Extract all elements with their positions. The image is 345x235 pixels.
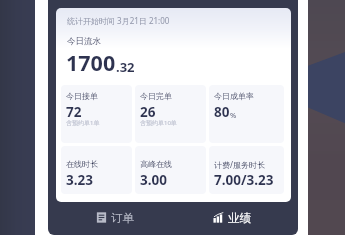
staticText: 3.23 xyxy=(66,171,93,189)
staticText: 高峰在线 xyxy=(140,159,172,169)
staticText: 订单 xyxy=(111,211,134,225)
button[interactable]: 高峰在线 xyxy=(135,146,206,194)
staticText: 含预约单1单 xyxy=(66,119,100,127)
staticText: 26 xyxy=(140,103,156,121)
staticText: 含预约单10单 xyxy=(140,119,177,127)
staticText: 在线时长 xyxy=(66,159,98,169)
staticText: 今日完单 xyxy=(140,91,172,101)
staticText: 1700 xyxy=(66,48,116,77)
staticText: 7.00/3.23 xyxy=(214,171,274,189)
button[interactable]: 计费/服务时长 xyxy=(209,146,284,194)
staticText: 今日接单 xyxy=(66,91,98,101)
staticText: 统计开始时间 3月21日 21:00 xyxy=(67,15,170,26)
button[interactable]: 订单 xyxy=(56,203,173,232)
button[interactable]: 业绩 xyxy=(173,203,291,232)
staticText: 今日流水 xyxy=(67,36,101,47)
staticText: % xyxy=(230,110,237,120)
staticText: 72 xyxy=(66,103,82,121)
staticText: 今日成单率 xyxy=(214,91,254,101)
button[interactable]: 今日成单率 xyxy=(209,85,284,143)
staticText: 80 xyxy=(214,103,230,121)
button[interactable]: 在线时长 xyxy=(61,146,132,194)
button[interactable]: 今日接单 xyxy=(61,85,132,143)
staticText: .32 xyxy=(116,58,135,76)
staticText: 计费/服务时长 xyxy=(214,159,265,170)
staticText: 业绩 xyxy=(228,211,251,225)
button[interactable]: 今日完单 xyxy=(135,85,206,143)
staticText: 3.00 xyxy=(140,171,167,189)
